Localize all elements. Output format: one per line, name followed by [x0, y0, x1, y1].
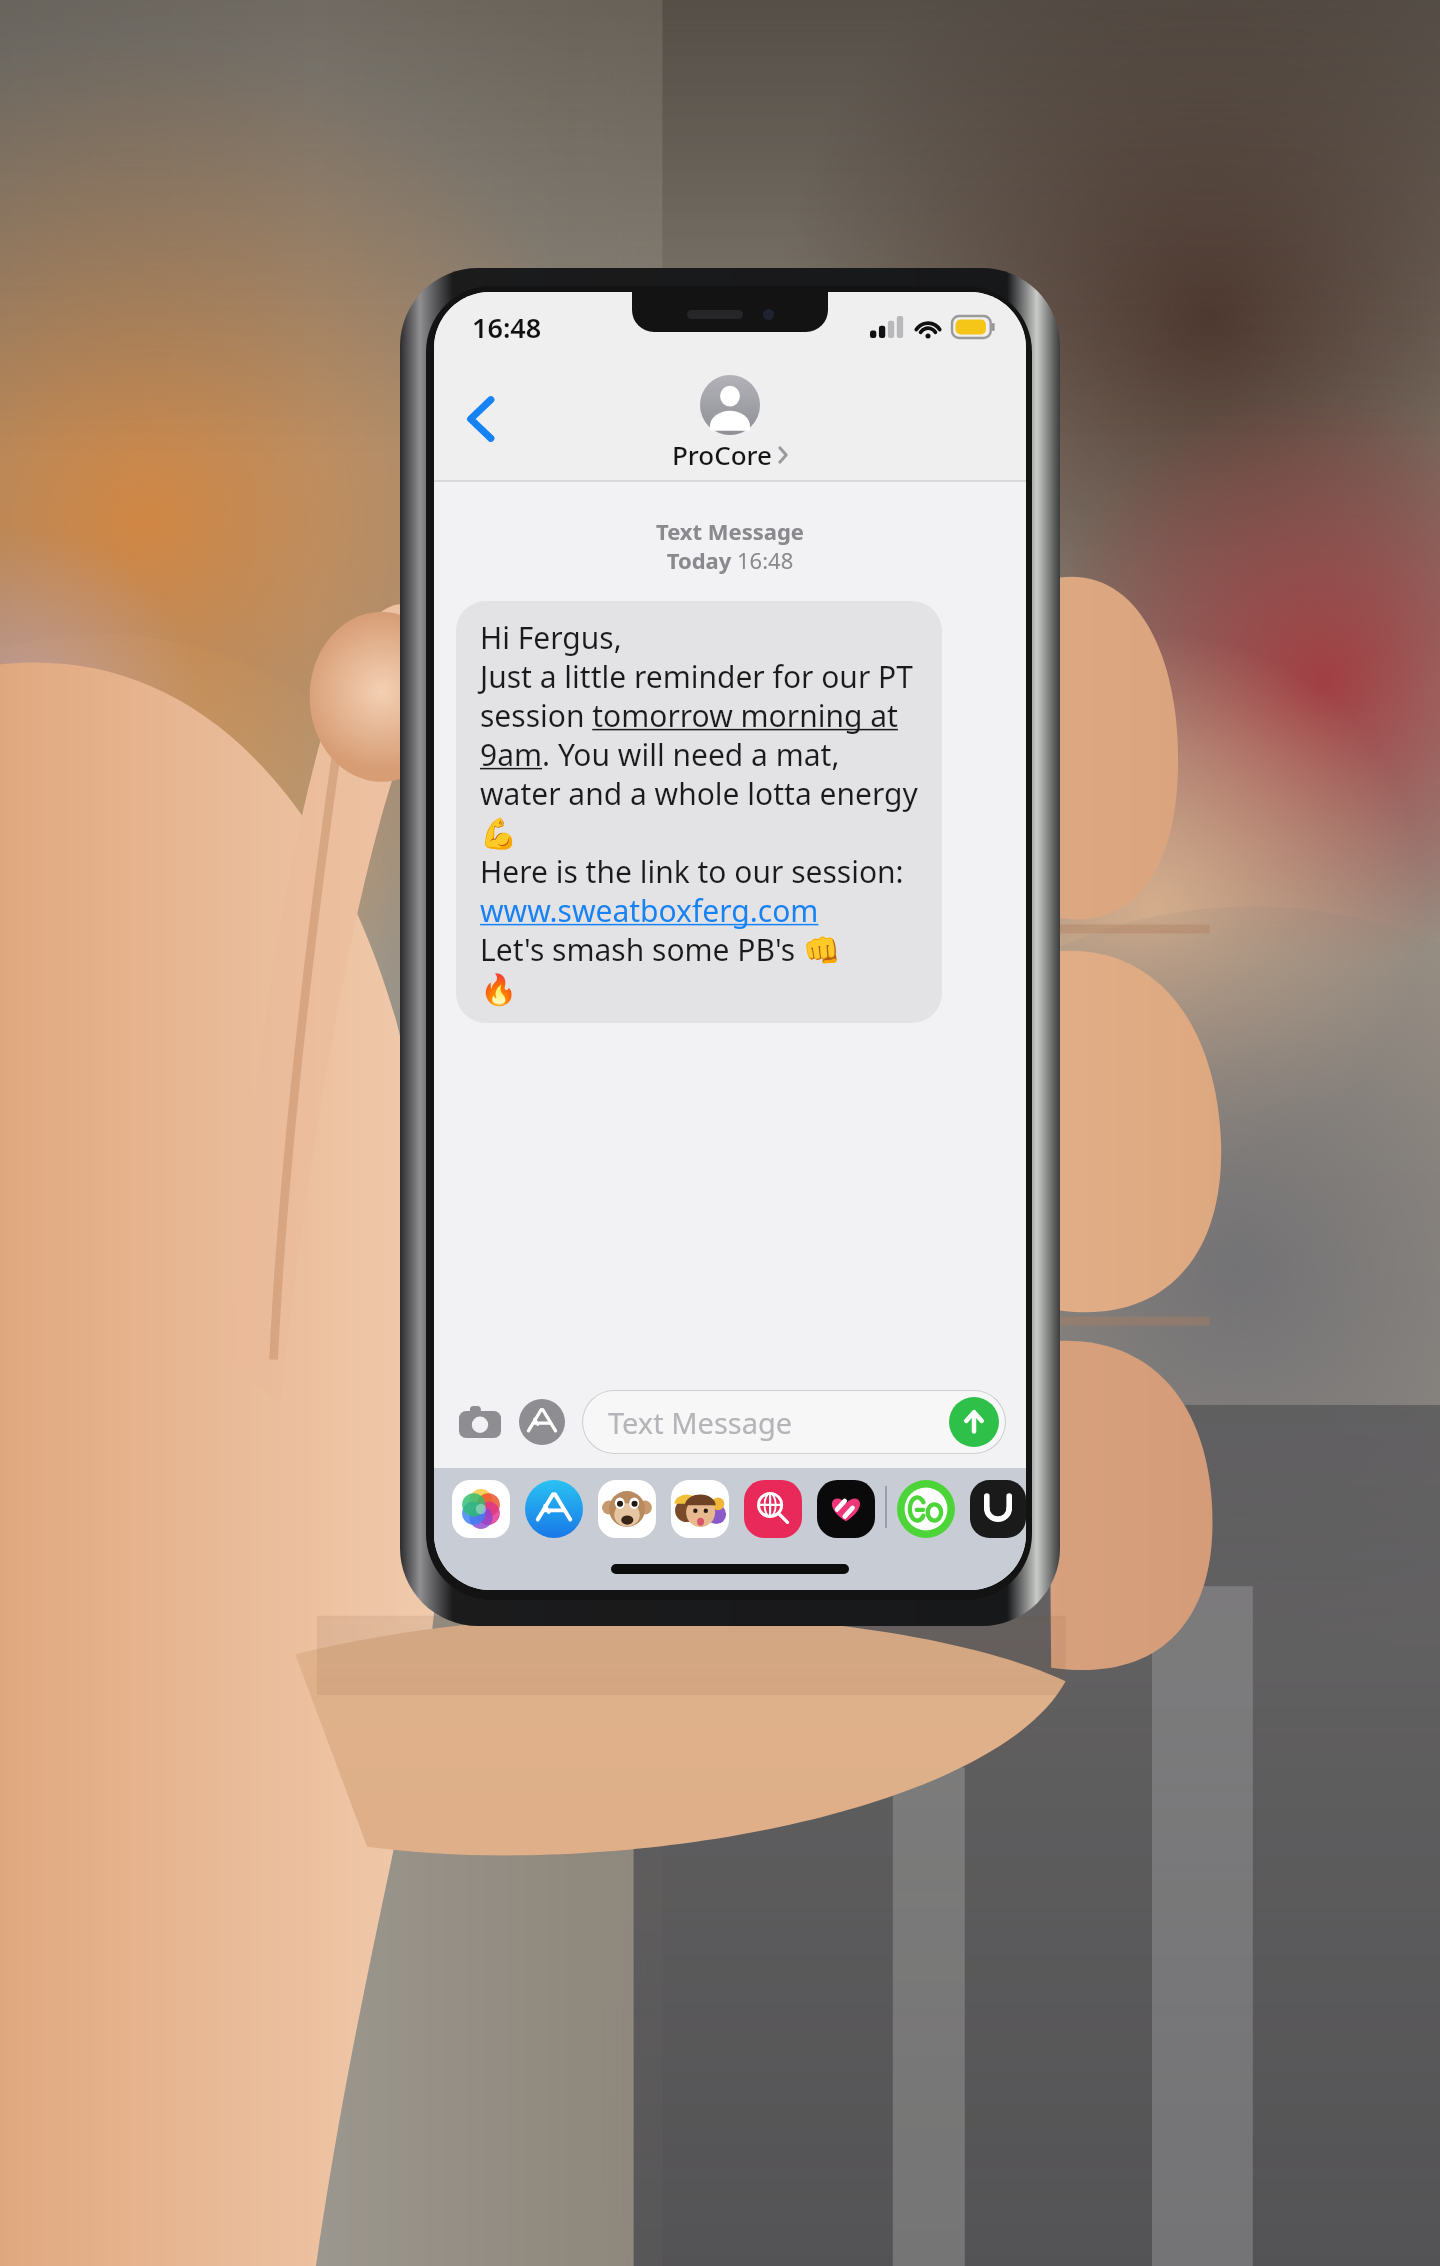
button[interactable]: Text Message — [582, 1390, 1006, 1454]
button[interactable]: Animoji — [598, 1480, 656, 1538]
button[interactable]: Hi Fergus, Just a little reminder for ou… — [456, 601, 942, 1023]
button[interactable]: ProCore — [672, 375, 788, 472]
button[interactable]: Memoji — [671, 1480, 729, 1538]
button[interactable]: Images — [744, 1480, 802, 1538]
staticText: ProCore — [672, 437, 773, 472]
button[interactable]: Go — [897, 1480, 955, 1538]
button[interactable]: Photos — [452, 1480, 510, 1538]
button[interactable]: App Store — [514, 1394, 570, 1450]
staticText: 16:48 — [472, 309, 542, 346]
button[interactable]: App Store — [525, 1480, 583, 1538]
button[interactable]: Back — [448, 386, 514, 452]
button[interactable]: Send — [949, 1397, 999, 1447]
button[interactable]: Camera — [452, 1394, 508, 1450]
button[interactable]: Fitness — [817, 1480, 875, 1538]
staticText: Hi Fergus, Just a little reminder for ou… — [480, 617, 918, 1007]
staticText: Text Message Today 16:48 — [434, 516, 1026, 575]
staticText: Text Message — [608, 1403, 793, 1442]
button[interactable]: More apps — [970, 1480, 1026, 1538]
